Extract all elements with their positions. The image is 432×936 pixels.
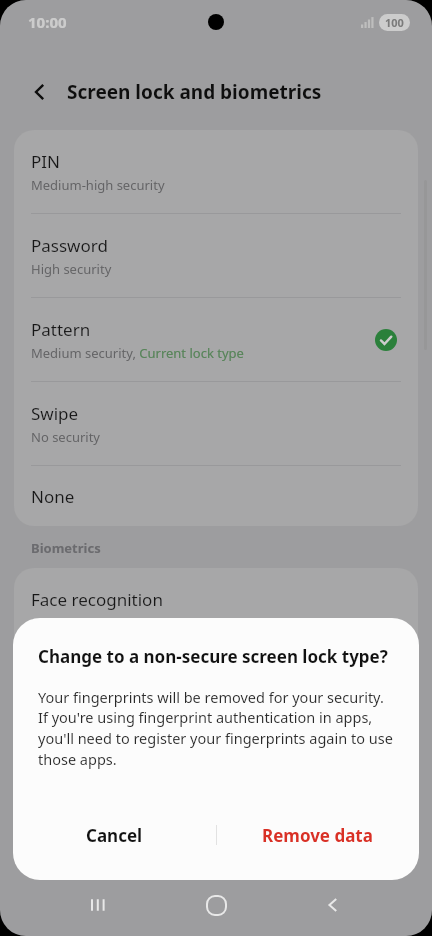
staticText: Swipe (31, 402, 79, 425)
staticText: High security (31, 260, 112, 278)
button[interactable]: Password (14, 214, 418, 298)
button[interactable]: Back (309, 881, 357, 929)
button[interactable]: Recents (75, 881, 123, 929)
staticText: Medium-high security (31, 176, 165, 194)
staticText: None (31, 485, 75, 508)
staticText: Change to a non-secure screen lock type? (38, 645, 388, 668)
staticText: Medium security, Current lock type (31, 344, 244, 362)
staticText: Biometrics (31, 539, 101, 557)
staticText: Password (31, 234, 108, 257)
button[interactable]: Remove data (216, 808, 419, 862)
staticText: Pattern (31, 318, 91, 341)
button[interactable]: Pattern (14, 298, 418, 382)
staticText: 10:00 (28, 12, 67, 32)
staticText: Cancel (86, 824, 143, 847)
button[interactable]: Home (192, 881, 240, 929)
staticText: Your fingerprints will be removed for yo… (38, 687, 397, 770)
button[interactable]: Swipe (14, 382, 418, 466)
staticText: 100 (385, 15, 404, 30)
staticText: Face recognition (31, 588, 163, 611)
staticText: Remove data (262, 824, 373, 847)
button[interactable]: Back (20, 72, 60, 112)
button[interactable]: PIN (14, 130, 418, 214)
staticText: No security (31, 428, 101, 446)
staticText: Not registered (31, 614, 120, 632)
button[interactable]: Face recognition (14, 568, 418, 651)
button[interactable]: Cancel (13, 808, 216, 862)
staticText: Screen lock and biometrics (67, 79, 322, 105)
staticText: PIN (31, 150, 60, 173)
button[interactable]: None (14, 466, 418, 526)
